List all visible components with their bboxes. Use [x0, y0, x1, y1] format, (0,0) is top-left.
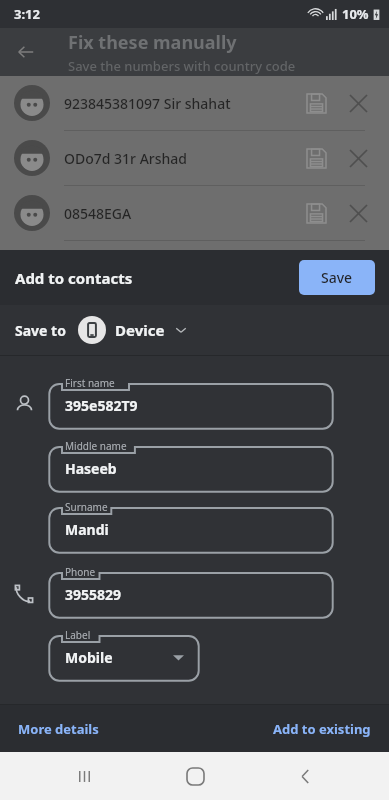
button[interactable]: Remove — [341, 196, 375, 230]
button[interactable]: Phone — [48, 566, 334, 619]
staticText: Phone — [65, 565, 96, 579]
button[interactable]: Device — [78, 316, 188, 344]
button[interactable]: Surname — [48, 501, 334, 554]
button[interactable]: Home — [168, 752, 222, 800]
staticText: Label — [65, 628, 91, 642]
staticText: Fix these manually — [68, 30, 237, 55]
button[interactable]: Save contact — [299, 86, 333, 120]
staticText: 10% — [342, 5, 369, 23]
staticText: 3:12 — [14, 5, 40, 23]
button[interactable]: More details — [0, 708, 117, 750]
button[interactable]: First name — [48, 377, 334, 430]
button[interactable]: Remove — [341, 141, 375, 175]
button[interactable]: Back — [10, 36, 42, 68]
staticText: Surname — [65, 500, 108, 514]
staticText: Middle name — [65, 439, 127, 453]
staticText: 923845381097 Sir shahat — [64, 94, 299, 113]
staticText: Save to — [15, 321, 66, 340]
staticText: Mobile — [65, 648, 113, 667]
button[interactable]: Remove — [341, 86, 375, 120]
button[interactable]: Recent apps — [57, 752, 111, 800]
button[interactable]: ODo7d 31r Arshad — [0, 131, 389, 186]
button[interactable]: Add to existing — [255, 708, 389, 750]
staticText: Add to existing — [273, 720, 371, 738]
button[interactable]: Middle name — [48, 440, 334, 493]
staticText: Save the numbers with country code — [68, 57, 296, 75]
staticText: 3955829 — [65, 585, 122, 604]
staticText: 08548EGA — [64, 204, 299, 223]
button[interactable]: Save contact — [299, 141, 333, 175]
staticText: Haseeb — [65, 459, 117, 478]
staticText: More details — [18, 720, 99, 738]
button[interactable]: 923845381097 Sir shahat — [0, 76, 389, 131]
staticText: First name — [65, 376, 115, 390]
staticText: Device — [115, 320, 165, 340]
staticText: ODo7d 31r Arshad — [64, 149, 299, 168]
button[interactable]: Label — [48, 629, 200, 682]
staticText: Mandi — [65, 520, 109, 539]
staticText: 395e582T9 — [65, 396, 138, 415]
button[interactable]: Back — [278, 752, 332, 800]
staticText: Add to contacts — [15, 268, 133, 288]
button[interactable]: Save contact — [299, 196, 333, 230]
button[interactable]: 08548EGA — [0, 186, 389, 241]
staticText: Save — [321, 268, 353, 287]
button[interactable]: Save — [299, 260, 375, 295]
